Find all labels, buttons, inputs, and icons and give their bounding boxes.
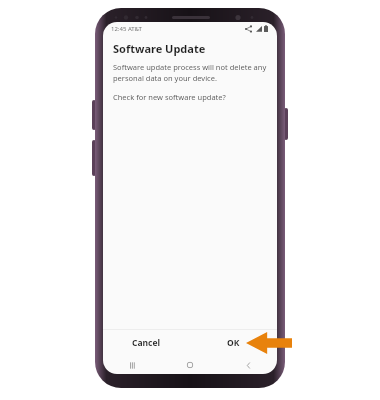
staticText: Check for new software update? [113,92,226,102]
button[interactable]: OK [190,330,277,356]
button[interactable]: Home [161,356,219,374]
button[interactable]: Recent apps [103,356,161,374]
staticText: Cancel [132,337,161,349]
staticText: Software Update [113,41,206,56]
staticText: Software update process will not delete … [113,62,267,83]
button[interactable]: Cancel [103,330,190,356]
staticText: 12:45 AT&T [111,25,142,33]
button[interactable]: Back [219,356,277,374]
staticText: OK [227,337,240,349]
